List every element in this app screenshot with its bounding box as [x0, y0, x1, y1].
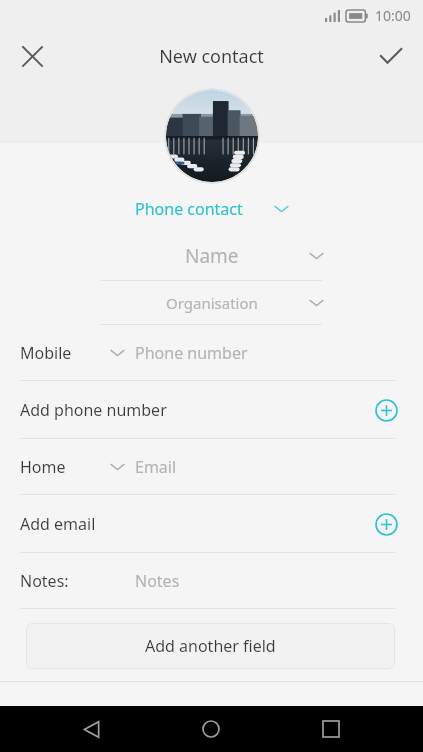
button[interactable]: Add phone number [0, 381, 423, 439]
staticText: Name [185, 243, 239, 269]
button[interactable]: Back [63, 706, 119, 752]
staticText: Phone contact [135, 198, 243, 220]
staticText: Email [135, 456, 177, 478]
staticText: Notes: [20, 570, 69, 592]
staticText: Add email [20, 513, 96, 535]
button[interactable]: Add another field [26, 623, 395, 669]
staticText: Notes [135, 570, 180, 592]
button[interactable]: Add email [0, 495, 423, 553]
staticText: New contact [159, 44, 264, 69]
button[interactable]: Phone contact [0, 187, 423, 231]
button[interactable]: Organisation [0, 281, 423, 325]
button[interactable]: Mobile [0, 325, 423, 381]
staticText: Add another field [145, 635, 276, 657]
staticText: Home [20, 456, 66, 478]
button[interactable]: Contact photo [164, 88, 260, 184]
staticText: Phone number [135, 342, 248, 364]
button[interactable]: Name [0, 231, 423, 281]
button[interactable]: Notes: [0, 553, 423, 609]
button[interactable]: Recents [303, 706, 359, 752]
staticText: Add phone number [20, 399, 167, 421]
staticText: 10:00 [375, 6, 411, 25]
button[interactable]: Home [183, 706, 239, 752]
staticText: Organisation [166, 293, 258, 313]
button[interactable]: Save [367, 32, 415, 80]
staticText: Mobile [20, 342, 72, 364]
button[interactable]: Home [0, 439, 423, 495]
button[interactable]: Cancel [8, 32, 56, 80]
